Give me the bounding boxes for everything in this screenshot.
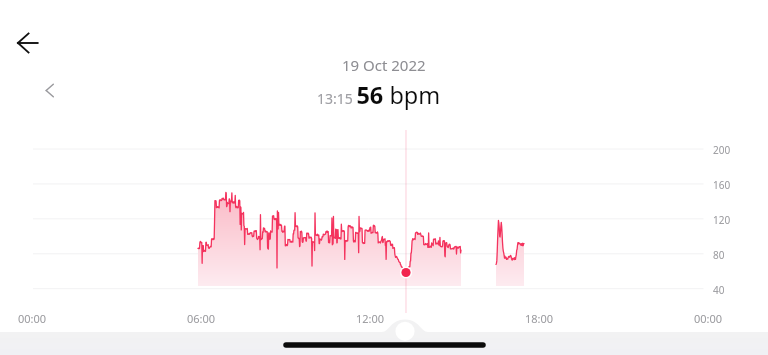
staticText: 00:00 xyxy=(18,311,47,326)
staticText: 12:00 xyxy=(356,311,385,326)
button[interactable]: Back xyxy=(8,23,48,63)
staticText: 40 xyxy=(713,283,725,297)
staticText: 160 xyxy=(713,178,731,192)
staticText: 200 xyxy=(713,143,731,157)
staticText: 00:00 xyxy=(694,311,723,326)
staticText: 80 xyxy=(713,248,725,262)
staticText: 06:00 xyxy=(187,311,216,326)
staticText: 19 Oct 2022 xyxy=(342,55,426,75)
button[interactable]: Previous day xyxy=(34,74,66,106)
staticText: 18:00 xyxy=(525,311,554,326)
staticText: 120 xyxy=(713,213,731,227)
staticText: 13:15 56 bpm xyxy=(317,79,441,111)
